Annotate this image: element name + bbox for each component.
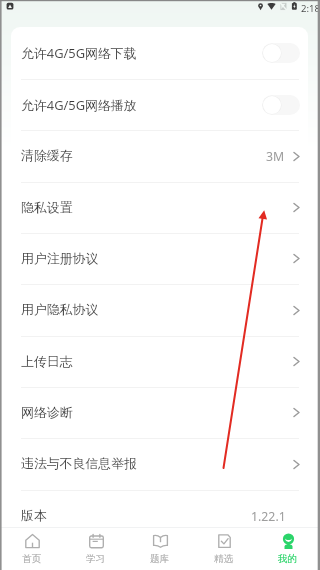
staticText: 用户注册协议 — [21, 251, 99, 267]
button[interactable]: 我的 — [256, 528, 320, 570]
staticText: 用户隐私协议 — [21, 302, 99, 318]
button[interactable]: 隐私设置 — [11, 182, 308, 233]
staticText: 隐私设置 — [21, 200, 73, 216]
button[interactable]: 用户隐私协议 — [11, 284, 308, 336]
staticText: 上传日志 — [21, 354, 73, 370]
button[interactable]: 清除缓存 — [11, 130, 308, 182]
button[interactable]: 允许4G/5G网络播放 — [11, 79, 308, 130]
button[interactable]: Toggle — [262, 95, 300, 115]
button[interactable]: 违法与不良信息举报 — [11, 438, 308, 490]
staticText: 清除缓存 — [21, 148, 73, 164]
button[interactable]: 上传日志 — [11, 336, 308, 387]
staticText: 精选 — [214, 553, 234, 565]
button[interactable]: 精选 — [192, 528, 256, 570]
button[interactable]: 首页 — [0, 528, 64, 570]
staticText: 首页 — [22, 553, 42, 565]
button[interactable]: 用户注册协议 — [11, 233, 308, 284]
staticText: 允许4G/5G网络下载 — [21, 44, 137, 62]
staticText: 网络诊断 — [21, 405, 73, 421]
staticText: 学习 — [86, 553, 106, 565]
staticText: 2:18 — [301, 2, 320, 15]
staticText: 题库 — [150, 553, 170, 565]
button[interactable]: 学习 — [64, 528, 128, 570]
button[interactable]: 允许4G/5G网络下载 — [11, 27, 308, 79]
button[interactable]: 题库 — [128, 528, 192, 570]
staticText: 允许4G/5G网络播放 — [21, 96, 137, 114]
staticText: 我的 — [278, 553, 298, 565]
button[interactable]: 网络诊断 — [11, 387, 308, 438]
staticText: 版本 — [21, 508, 47, 524]
button[interactable]: 版本 — [11, 490, 308, 527]
button[interactable]: Toggle — [262, 43, 300, 63]
staticText: 违法与不良信息举报 — [21, 456, 138, 472]
staticText: 3M — [266, 148, 285, 165]
staticText: 1.22.1 — [251, 508, 286, 525]
